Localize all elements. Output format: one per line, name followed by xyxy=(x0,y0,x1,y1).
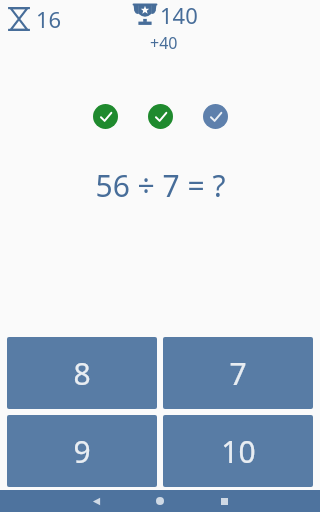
button[interactable]: 10 xyxy=(163,415,313,487)
staticText: 8 xyxy=(73,353,91,394)
button[interactable]: Back xyxy=(64,490,128,512)
button[interactable]: Recent apps xyxy=(192,490,256,512)
staticText: 140 xyxy=(160,0,198,30)
button[interactable]: Correct xyxy=(203,104,228,129)
staticText: 10 xyxy=(221,431,256,472)
button[interactable]: Correct xyxy=(148,104,173,129)
button[interactable]: Home xyxy=(128,490,192,512)
other: Score xyxy=(130,0,160,30)
staticText: 9 xyxy=(73,431,91,472)
staticText: 16 xyxy=(36,4,62,34)
button[interactable]: Correct xyxy=(93,104,118,129)
button[interactable]: Score xyxy=(130,0,198,52)
staticText: 56 ÷ 7 = ? xyxy=(95,165,226,206)
staticText: +40 xyxy=(150,32,178,54)
staticText: 7 xyxy=(229,353,247,394)
button[interactable]: 8 xyxy=(7,337,157,409)
button[interactable]: 7 xyxy=(163,337,313,409)
other: Timer xyxy=(8,6,30,32)
button[interactable]: Timer xyxy=(8,4,62,34)
button[interactable]: 9 xyxy=(7,415,157,487)
